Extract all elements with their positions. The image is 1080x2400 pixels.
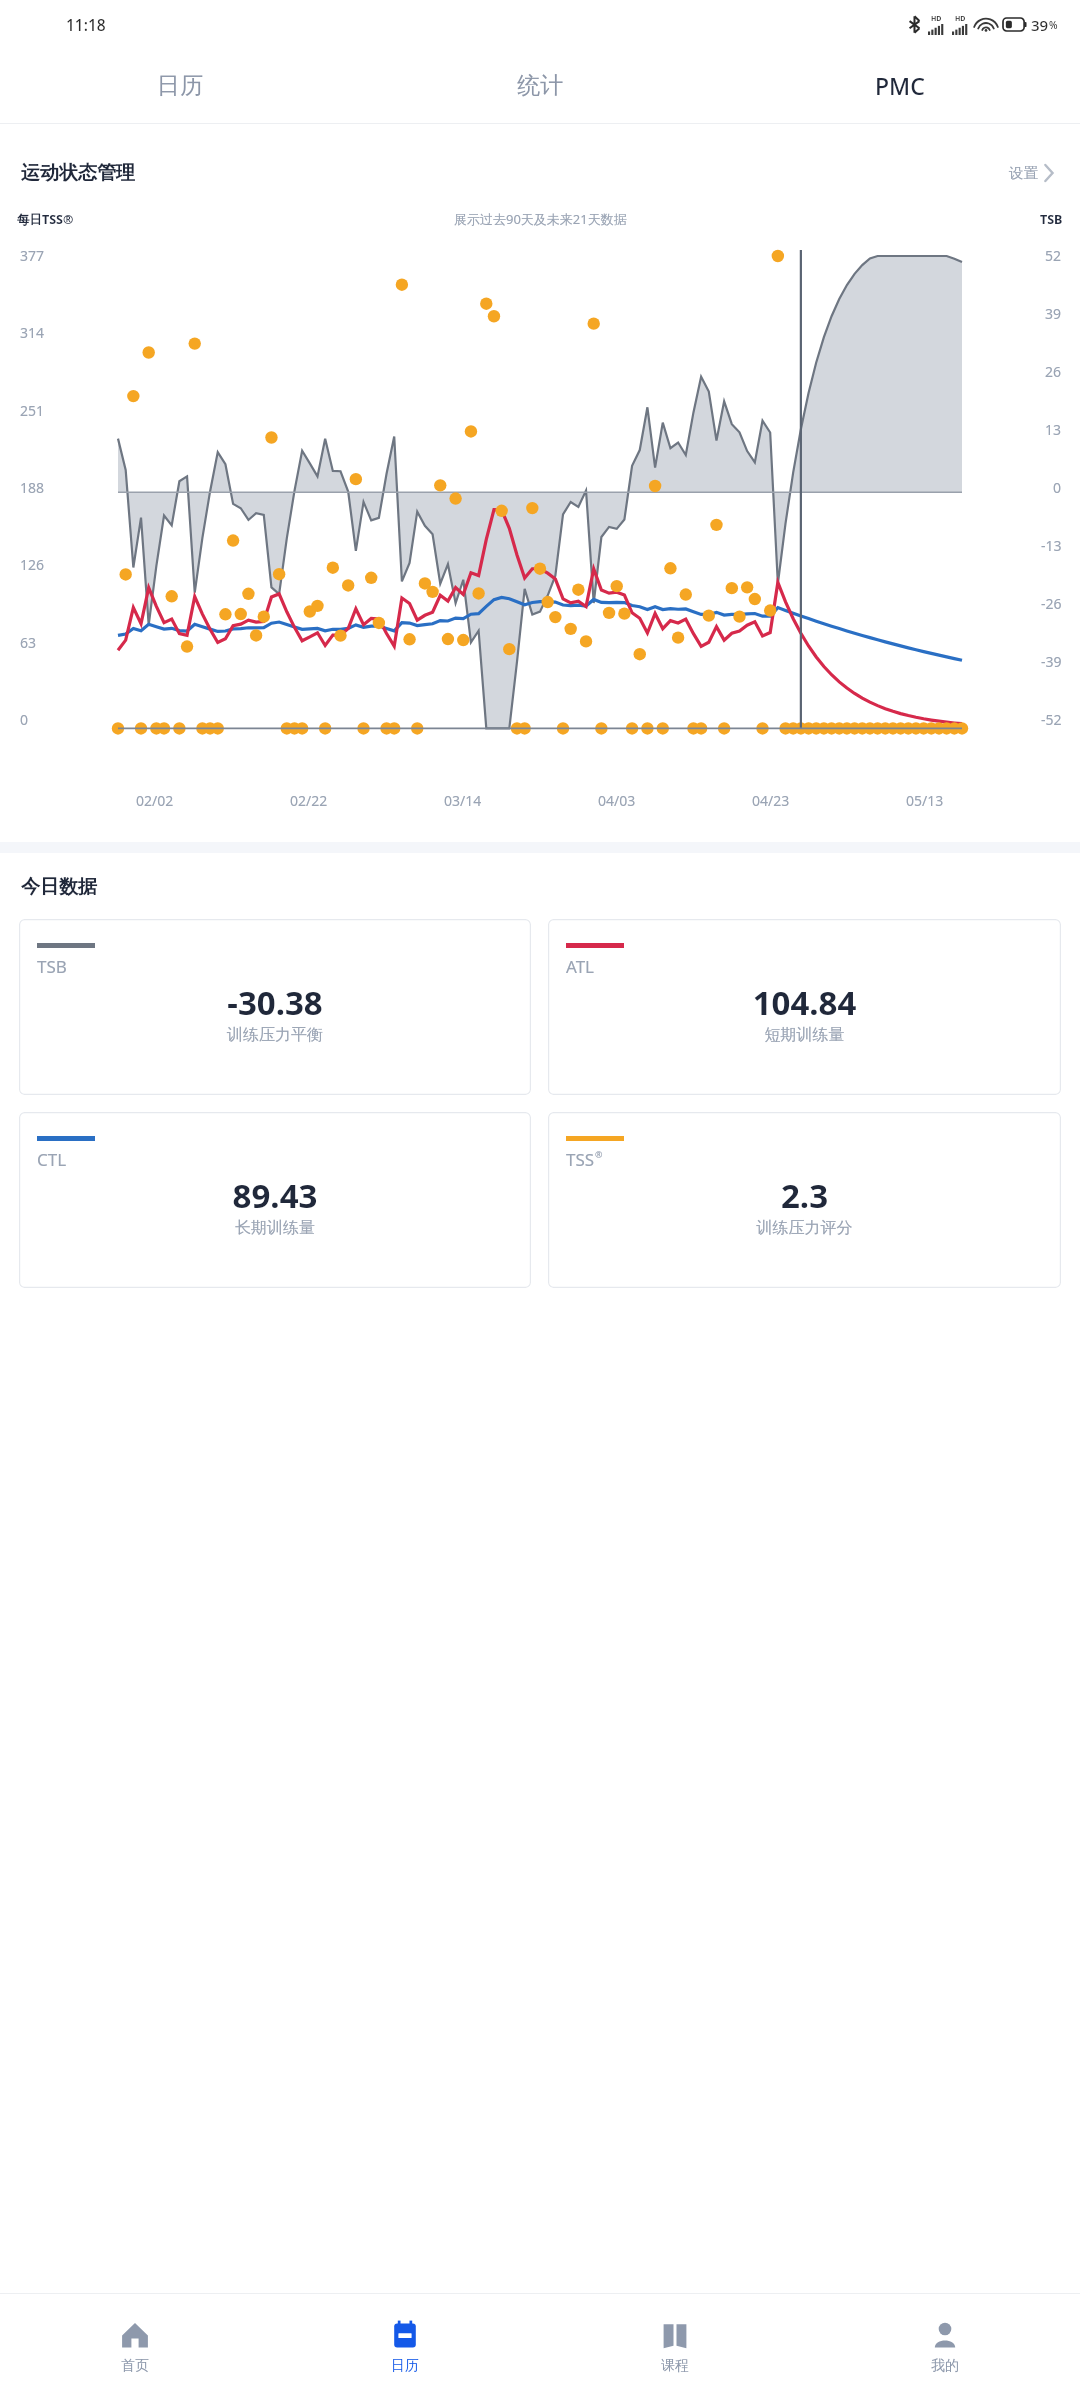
button[interactable]: PMC	[720, 48, 1080, 123]
staticText: 统计	[517, 71, 563, 100]
staticText: 日历	[157, 71, 203, 100]
staticText: 02/22	[290, 791, 328, 810]
staticText: 05/13	[906, 791, 944, 810]
button[interactable]: 课程	[540, 2294, 810, 2400]
staticText: 251	[20, 401, 45, 420]
staticText: 每日TSS®	[17, 211, 74, 228]
staticText: 0	[1053, 478, 1062, 497]
staticText: CTL	[37, 1148, 67, 1171]
staticText: PMC	[875, 70, 925, 101]
staticText: TSB	[1040, 211, 1063, 228]
staticText: 设置	[1009, 164, 1038, 182]
staticText: 02/02	[136, 791, 174, 810]
button[interactable]: 我的	[810, 2294, 1080, 2400]
staticText: %	[1049, 18, 1058, 32]
staticText: 126	[20, 555, 45, 574]
staticText: TSB	[37, 955, 67, 978]
staticText: HD	[931, 14, 942, 24]
staticText: -52	[1041, 710, 1062, 729]
staticText: -26	[1041, 594, 1062, 613]
staticText: 训练压力平衡	[37, 1025, 513, 1045]
staticText: 04/03	[598, 791, 636, 810]
staticText: 04/23	[752, 791, 790, 810]
staticText: 89.43	[37, 1173, 513, 1218]
staticText: 今日数据	[21, 875, 97, 899]
staticText: TSS	[566, 1148, 595, 1171]
staticText: 52	[1045, 246, 1062, 265]
staticText: 13	[1045, 420, 1062, 439]
staticText: 首页	[121, 2357, 149, 2375]
staticText: 314	[20, 323, 45, 342]
staticText: 长期训练量	[37, 1218, 513, 1238]
button[interactable]: TSB	[19, 919, 531, 1095]
staticText: HD	[955, 14, 966, 24]
staticText: 104.84	[566, 980, 1043, 1025]
staticText: 展示过去90天及未来21天数据	[454, 210, 627, 228]
staticText: ATL	[566, 955, 595, 978]
button[interactable]: CTL	[19, 1112, 531, 1288]
button[interactable]: 首页	[0, 2294, 270, 2400]
staticText: 我的	[931, 2357, 959, 2375]
button[interactable]: 日历	[0, 48, 360, 123]
staticText: 26	[1045, 362, 1062, 381]
staticText: 2.3	[566, 1173, 1043, 1218]
staticText: 39	[1045, 304, 1062, 323]
button[interactable]: ATL	[548, 919, 1061, 1095]
staticText: 39	[1031, 15, 1049, 35]
staticText: 课程	[661, 2357, 689, 2375]
button[interactable]: TSS	[548, 1112, 1061, 1288]
staticText: -30.38	[37, 980, 513, 1025]
staticText: 63	[20, 633, 37, 652]
staticText: 11:18	[66, 14, 106, 35]
staticText: ®	[595, 1148, 603, 1160]
staticText: 运动状态管理	[21, 161, 135, 185]
staticText: -39	[1041, 652, 1062, 671]
button[interactable]: 设置	[1003, 158, 1059, 188]
button[interactable]: 统计	[360, 48, 720, 123]
staticText: 188	[20, 478, 45, 497]
staticText: 03/14	[444, 791, 482, 810]
button[interactable]: 日历	[270, 2294, 540, 2400]
staticText: 短期训练量	[566, 1025, 1043, 1045]
staticText: 0	[20, 710, 29, 729]
staticText: 日历	[391, 2357, 419, 2375]
staticText: -13	[1041, 536, 1062, 555]
staticText: 训练压力评分	[566, 1218, 1043, 1238]
staticText: 377	[20, 246, 45, 265]
